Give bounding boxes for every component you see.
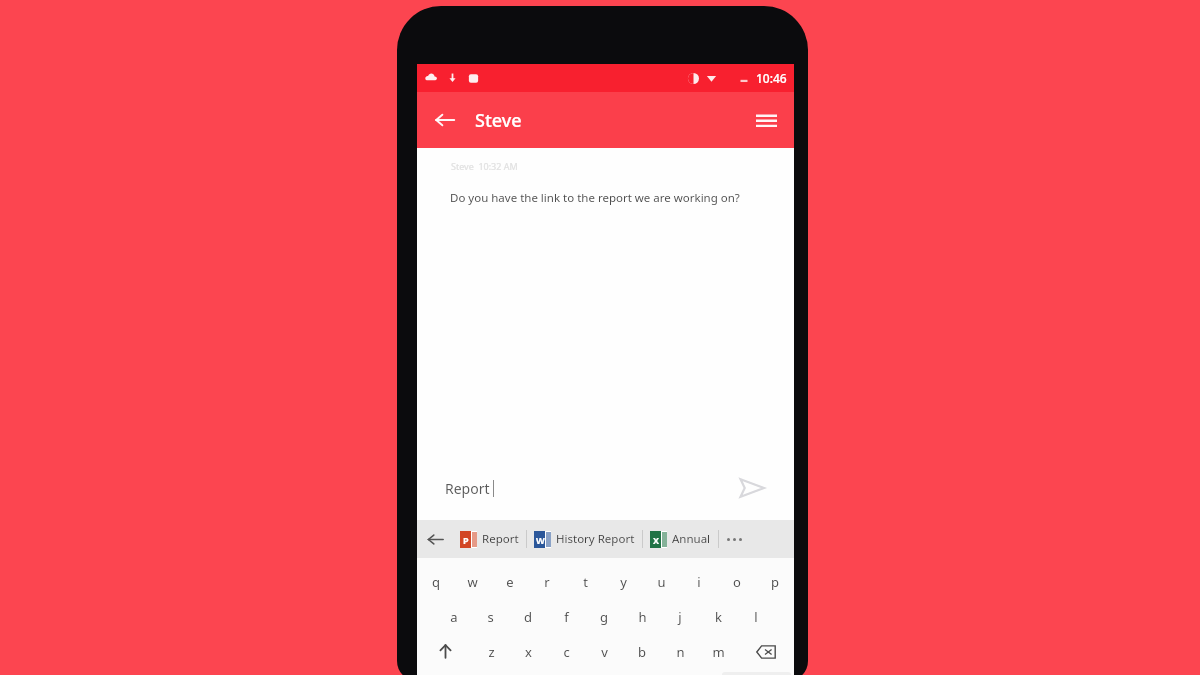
- button[interactable]: Send: [732, 468, 772, 508]
- button[interactable]: l: [737, 599, 775, 634]
- staticText: g: [600, 608, 608, 626]
- button[interactable]: t: [566, 564, 604, 599]
- staticText: u: [657, 573, 666, 591]
- button[interactable]: e: [491, 564, 528, 599]
- staticText: t: [583, 573, 588, 591]
- button[interactable]: r: [528, 564, 566, 599]
- staticText: s: [487, 608, 494, 626]
- staticText: k: [715, 608, 722, 626]
- button[interactable]: c: [547, 634, 585, 669]
- staticText: p: [771, 573, 779, 591]
- button[interactable]: a: [435, 599, 472, 634]
- button[interactable]: u: [642, 564, 680, 599]
- button[interactable]: v: [585, 634, 623, 669]
- button[interactable]: Menu: [746, 100, 786, 140]
- button[interactable]: y: [604, 564, 642, 599]
- button[interactable]: Backspace: [737, 634, 794, 669]
- button[interactable]: b: [623, 634, 661, 669]
- staticText: Report: [482, 531, 519, 547]
- button[interactable]: Shift: [417, 634, 473, 669]
- staticText: o: [733, 573, 741, 591]
- staticText: b: [638, 643, 646, 661]
- button[interactable]: Report: [445, 479, 494, 498]
- button[interactable]: Back: [417, 520, 453, 558]
- button[interactable]: w: [454, 564, 491, 599]
- staticText: y: [620, 573, 627, 591]
- staticText: n: [676, 643, 685, 661]
- button[interactable]: p: [756, 564, 794, 599]
- button[interactable]: n: [661, 634, 699, 669]
- button[interactable]: z: [473, 634, 510, 669]
- staticText: Do you have the link to the report we ar…: [450, 190, 740, 206]
- button[interactable]: f: [547, 599, 585, 634]
- staticText: l: [754, 608, 758, 626]
- button[interactable]: d: [509, 599, 547, 634]
- button[interactable]: x: [510, 634, 547, 669]
- staticText: r: [544, 573, 550, 591]
- staticText: x: [525, 643, 532, 661]
- staticText: c: [563, 643, 570, 661]
- button[interactable]: o: [718, 564, 756, 599]
- staticText: h: [638, 608, 647, 626]
- staticText: a: [450, 608, 458, 626]
- staticText: W: [536, 534, 545, 546]
- staticText: v: [601, 643, 608, 661]
- button[interactable]: k: [699, 599, 737, 634]
- button[interactable]: q: [417, 564, 454, 599]
- staticText: History Report: [556, 531, 635, 547]
- staticText: Report: [445, 479, 490, 498]
- staticText: m: [712, 643, 725, 661]
- button[interactable]: j: [661, 599, 699, 634]
- staticText: f: [564, 608, 569, 626]
- staticText: P: [463, 534, 469, 546]
- staticText: i: [697, 573, 701, 591]
- staticText: z: [488, 643, 495, 661]
- staticText: 10:46: [756, 70, 787, 86]
- staticText: Annual: [672, 531, 711, 547]
- button[interactable]: m: [699, 634, 737, 669]
- button[interactable]: More: [719, 520, 749, 558]
- button[interactable]: g: [585, 599, 623, 634]
- staticText: j: [678, 608, 682, 626]
- button[interactable]: h: [623, 599, 661, 634]
- button[interactable]: Back: [425, 100, 465, 140]
- button[interactable]: X: [650, 520, 711, 558]
- staticText: e: [506, 573, 514, 591]
- staticText: w: [467, 573, 478, 591]
- button[interactable]: P: [460, 520, 519, 558]
- button[interactable]: i: [680, 564, 718, 599]
- staticText: Steve: [475, 108, 522, 133]
- staticText: q: [432, 573, 440, 591]
- staticText: d: [524, 608, 532, 626]
- staticText: Steve 10:32 AM: [451, 160, 518, 172]
- staticText: X: [653, 534, 660, 546]
- button[interactable]: W: [534, 520, 635, 558]
- button[interactable]: s: [472, 599, 509, 634]
